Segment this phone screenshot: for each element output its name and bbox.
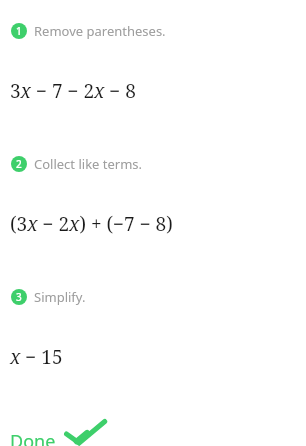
staticText: (3x − 2x) + (−7 − 8) (10, 211, 173, 237)
staticText: Simplify. (34, 288, 86, 306)
staticText: Remove parentheses. (34, 22, 166, 40)
staticText: x − 15 (10, 344, 63, 370)
staticText: 3 (16, 290, 22, 304)
button[interactable]: 2 (0, 153, 306, 175)
staticText: Collect like terms. (34, 155, 143, 173)
button[interactable]: 3 (0, 286, 306, 308)
button[interactable]: 1 (0, 20, 306, 42)
other: Completed (64, 419, 106, 444)
staticText: Done (10, 429, 56, 446)
staticText: 3x − 7 − 2x − 8 (10, 78, 136, 104)
button[interactable]: Done (0, 417, 114, 446)
staticText: 1 (16, 24, 22, 38)
staticText: 2 (16, 157, 22, 171)
